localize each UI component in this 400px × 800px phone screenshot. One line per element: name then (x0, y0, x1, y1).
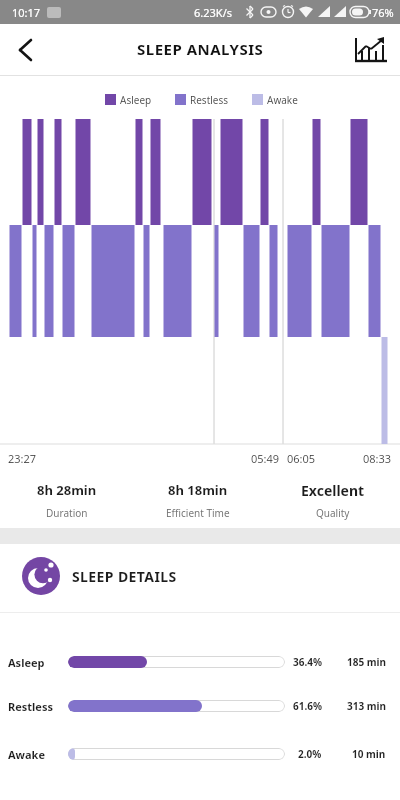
staticText: Awake (8, 747, 46, 762)
staticText: 05:49 (251, 451, 280, 466)
staticText: Excellent (301, 481, 365, 499)
staticText: 61.6% (293, 699, 322, 713)
staticText: 185 min (347, 655, 386, 669)
staticText: Quality (316, 506, 350, 520)
staticText: Asleep (8, 655, 45, 670)
staticText: SLEEP DETAILS (72, 567, 177, 586)
staticText: 8h 28min (37, 481, 97, 499)
staticText: 10 min (352, 747, 386, 761)
staticText: Restless (190, 93, 229, 107)
staticText: Efficient Time (166, 506, 230, 520)
staticText: 36.4% (293, 655, 322, 669)
staticText: 06:05 (287, 451, 316, 466)
staticText: 8h 18min (168, 481, 228, 499)
staticText: 08:33 (363, 451, 392, 466)
staticText: 313 min (347, 699, 386, 713)
staticText: 10:17 (12, 5, 41, 20)
button[interactable] (348, 32, 392, 68)
staticText: 2.0% (298, 747, 322, 761)
staticText: Duration (46, 506, 88, 520)
staticText: Restless (8, 699, 53, 714)
staticText: Asleep (120, 93, 152, 107)
staticText: 6.23K/s (194, 5, 232, 20)
button[interactable]: Restless (0, 694, 400, 718)
button[interactable] (8, 32, 44, 68)
button[interactable]: SLEEP DETAILS (0, 544, 400, 608)
staticText: SLEEP ANALYSIS (137, 39, 264, 59)
button[interactable]: Awake (0, 742, 400, 766)
staticText: Awake (267, 93, 298, 107)
staticText: 23:27 (8, 451, 37, 466)
button[interactable]: Asleep (0, 650, 400, 674)
staticText: 76% (372, 5, 394, 20)
